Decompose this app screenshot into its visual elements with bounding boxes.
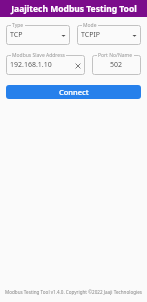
button[interactable]: Mode — [77, 25, 141, 45]
button[interactable]: Modbus Slave Address — [6, 55, 85, 75]
button[interactable]: Port No/Name — [92, 55, 141, 75]
staticText: TCPIP — [81, 30, 101, 40]
staticText: Jaajitech Modbus Testing Tool — [11, 3, 137, 15]
staticText: Port No/Name — [98, 52, 133, 59]
staticText: TCP — [10, 30, 23, 40]
button[interactable]: Type — [6, 25, 70, 45]
staticText: Modbus Slave Address — [12, 52, 65, 59]
staticText: 192.168.1.10 — [10, 60, 52, 70]
staticText: Mode — [83, 22, 97, 29]
button[interactable]: Clear address — [73, 61, 82, 70]
button[interactable]: Connect — [6, 85, 141, 99]
staticText: Connect — [59, 87, 89, 97]
staticText: Type — [12, 22, 24, 29]
staticText: Modbus Testing Tool v1.4.0. Copyright ©2… — [5, 289, 142, 295]
staticText: 502 — [110, 60, 123, 70]
